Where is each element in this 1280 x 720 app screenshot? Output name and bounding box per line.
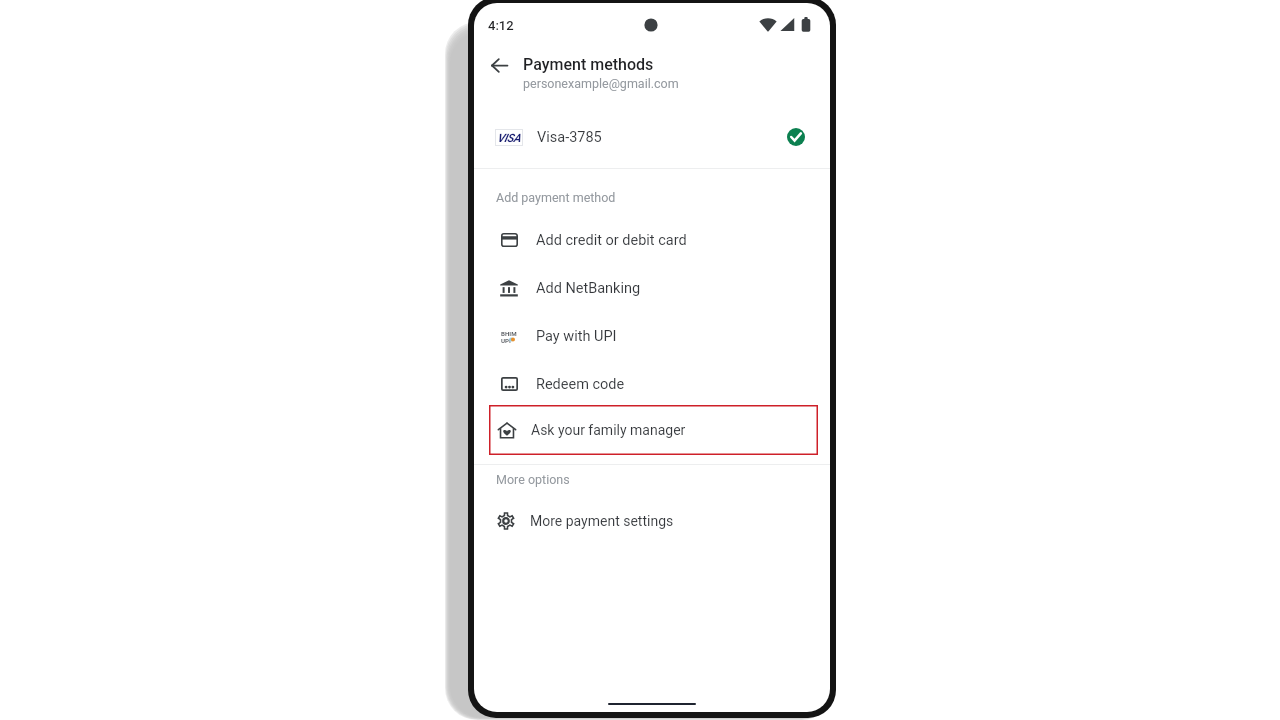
staticText: Visa-3785: [537, 129, 602, 146]
staticText: 4:12: [488, 18, 514, 33]
staticText: BHIM: [501, 330, 517, 337]
staticText: More payment settings: [530, 513, 674, 529]
button[interactable]: Back: [485, 52, 513, 78]
staticText: UPI: [501, 337, 511, 344]
staticText: Pay with UPI: [536, 328, 617, 345]
staticText: Payment methods: [523, 55, 654, 74]
staticText: Ask your family manager: [531, 422, 686, 438]
button[interactable]: Add NetBanking: [474, 264, 830, 312]
staticText: Add NetBanking: [536, 280, 641, 297]
button[interactable]: VISA: [474, 118, 830, 156]
button[interactable]: BHIM: [474, 312, 830, 360]
staticText: personexample@gmail.com: [523, 76, 679, 91]
staticText: Add credit or debit card: [536, 232, 687, 249]
staticText: Redeem code: [536, 376, 625, 393]
staticText: More options: [496, 472, 570, 487]
button[interactable]: Add credit or debit card: [474, 216, 830, 264]
staticText: VISA: [497, 131, 521, 144]
button[interactable]: Ask your family manager: [489, 405, 818, 455]
button[interactable]: More payment settings: [489, 497, 818, 545]
staticText: Add payment method: [496, 190, 616, 205]
button[interactable]: Redeem code: [474, 360, 830, 408]
